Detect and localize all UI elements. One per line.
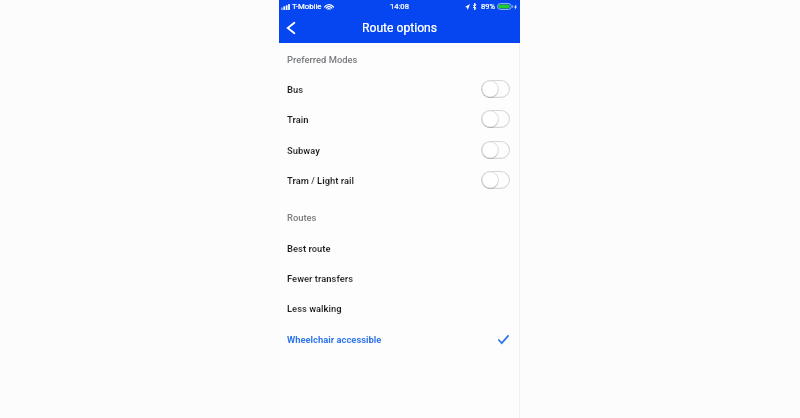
button[interactable]: Less walking [279, 293, 520, 323]
button[interactable]: Bus [279, 74, 520, 104]
staticText: Less walking [287, 303, 342, 314]
button[interactable]: Toggle Train [481, 110, 510, 128]
button[interactable]: Toggle Bus [481, 80, 510, 98]
staticText: Train [287, 114, 309, 125]
staticText: T-Mobile [292, 2, 322, 11]
button[interactable]: Subway [279, 135, 520, 165]
button[interactable]: Best route [279, 233, 520, 263]
staticText: Fewer transfers [287, 273, 354, 284]
button[interactable]: Wheelchair accessible [279, 324, 520, 354]
button[interactable]: Tram / Light rail [279, 165, 520, 195]
staticText: Wheelchair accessible [287, 334, 382, 345]
button[interactable]: Train [279, 104, 520, 134]
staticText: 89% [481, 2, 496, 11]
button[interactable]: Fewer transfers [279, 263, 520, 293]
staticText: Subway [287, 145, 320, 156]
staticText: Tram / Light rail [287, 175, 355, 186]
staticText: Preferred Modes [287, 54, 358, 65]
button[interactable]: Toggle Subway [481, 141, 510, 159]
staticText: Bus [287, 84, 304, 95]
button[interactable]: Back [282, 17, 300, 39]
button[interactable]: Toggle Tram / Light rail [481, 171, 510, 189]
staticText: Best route [287, 243, 331, 254]
staticText: 14:08 [390, 2, 409, 11]
staticText: Route options [362, 21, 438, 35]
staticText: Routes [287, 212, 317, 223]
